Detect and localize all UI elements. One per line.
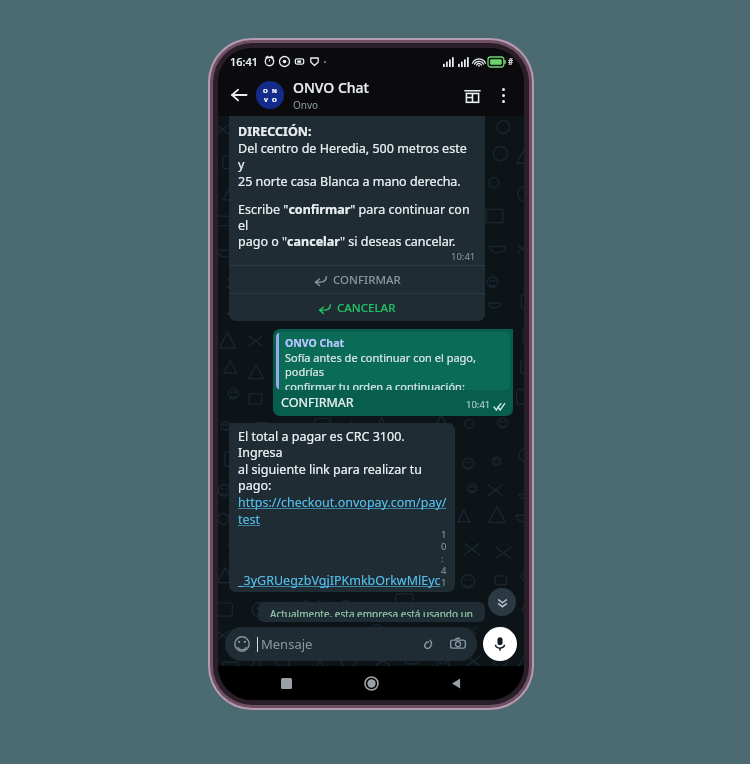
button[interactable]: More options [488, 80, 518, 110]
staticText: al siguiente link para realizar tu pago: [238, 461, 447, 494]
staticText: Escribe "confirmar" para continuar con e… [238, 201, 476, 250]
staticText: ONVO Chat [285, 336, 345, 350]
staticText: Mensaje [261, 635, 313, 653]
staticText: CONFIRMAR [281, 394, 354, 411]
button[interactable]: Recents [269, 666, 303, 700]
staticText: confirmar tu orden a continuación: [285, 379, 465, 390]
staticText: O [263, 87, 268, 95]
button[interactable]: Home [354, 666, 388, 700]
button[interactable]: Actualmente, esta empresa está usando un… [258, 602, 485, 622]
staticText: # [508, 56, 514, 67]
button[interactable]: O [256, 78, 456, 112]
button[interactable]: Camera [448, 634, 468, 654]
button[interactable]: Scroll to bottom [488, 588, 516, 616]
staticText: 10:41 [441, 528, 447, 589]
staticText: ONVO Chat [293, 78, 369, 97]
button[interactable]: Mensaje [225, 627, 477, 661]
button[interactable]: CONFIRMAR [229, 266, 485, 293]
staticText: El total a pagar es CRC 3100. Ingresa [238, 428, 447, 461]
staticText: CANCELAR [337, 300, 396, 316]
button[interactable]: Back [439, 666, 473, 700]
button[interactable]: CANCELAR [229, 294, 485, 321]
staticText: _3yGRUegzbVgjIPKmkbOrkwMlEyc [238, 572, 441, 589]
staticText: Actualmente, esta empresa está usando un… [266, 607, 477, 617]
staticText: DIRECCIÓN: [238, 123, 312, 140]
staticText: 10:41 [451, 250, 476, 263]
button[interactable]: El total a pagar es CRC 3100. Ingresa [229, 423, 455, 592]
staticText: N [272, 87, 277, 95]
staticText: 25 norte casa Blanca a mano derecha. [238, 173, 461, 190]
button[interactable]: Voice message [483, 627, 517, 661]
button[interactable]: https://checkout.onvopay.com/pay/test [238, 494, 447, 528]
button[interactable]: ONVO Chat [273, 329, 513, 416]
staticText: 16:41 [230, 54, 259, 69]
staticText: Sofía antes de continuar con el pago, po… [285, 350, 505, 379]
staticText: Del centro de Heredia, 500 metros este y [238, 140, 476, 173]
button[interactable]: Store [456, 79, 488, 111]
button[interactable]: DIRECCIÓN: [229, 116, 485, 321]
staticText: CONFIRMAR [333, 272, 401, 288]
staticText: O [272, 96, 277, 104]
button[interactable]: Attach [417, 634, 437, 654]
staticText: V [264, 96, 268, 104]
staticText: Onvo [293, 98, 319, 112]
button[interactable]: Back [224, 80, 254, 110]
staticText: 10:41 [466, 398, 491, 411]
